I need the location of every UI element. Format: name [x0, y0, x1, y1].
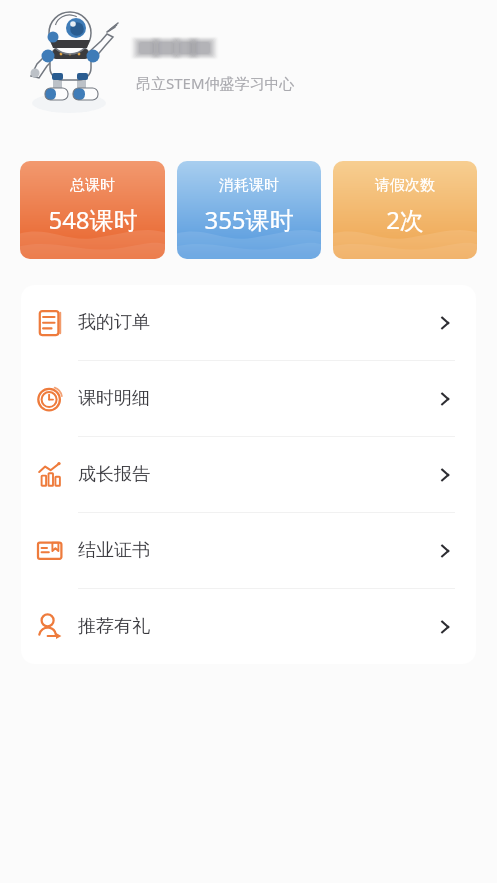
- button[interactable]: 结业证书: [21, 513, 476, 588]
- staticText: 总课时: [70, 176, 115, 195]
- staticText: 昂立STEM仲盛学习中心: [136, 73, 295, 93]
- staticText: 请假次数: [375, 176, 435, 195]
- button[interactable]: 消耗课时: [177, 161, 321, 259]
- staticText: 355课时: [204, 203, 294, 236]
- staticText: 推荐有礼: [78, 615, 150, 638]
- button[interactable]: 我的订单: [21, 285, 476, 360]
- other: Open 推荐有礼: [436, 618, 454, 636]
- button[interactable]: 推荐有礼: [21, 589, 476, 664]
- staticText: 消耗课时: [219, 176, 279, 195]
- button[interactable]: 课时明细: [21, 361, 476, 436]
- staticText: 课时明细: [78, 387, 150, 410]
- staticText: 2次: [386, 203, 424, 236]
- staticText: 我的订单: [78, 311, 150, 334]
- button[interactable]: 总课时: [20, 161, 165, 259]
- staticText: 结业证书: [78, 539, 150, 562]
- other: Open 课时明细: [436, 390, 454, 408]
- staticText: 548课时: [48, 203, 138, 236]
- other: Open 成长报告: [436, 466, 454, 484]
- other: Open 结业证书: [436, 542, 454, 560]
- button[interactable]: 成长报告: [21, 437, 476, 512]
- button[interactable]: 请假次数: [333, 161, 477, 259]
- staticText: 成长报告: [78, 463, 150, 486]
- other: Open 我的订单: [436, 314, 454, 332]
